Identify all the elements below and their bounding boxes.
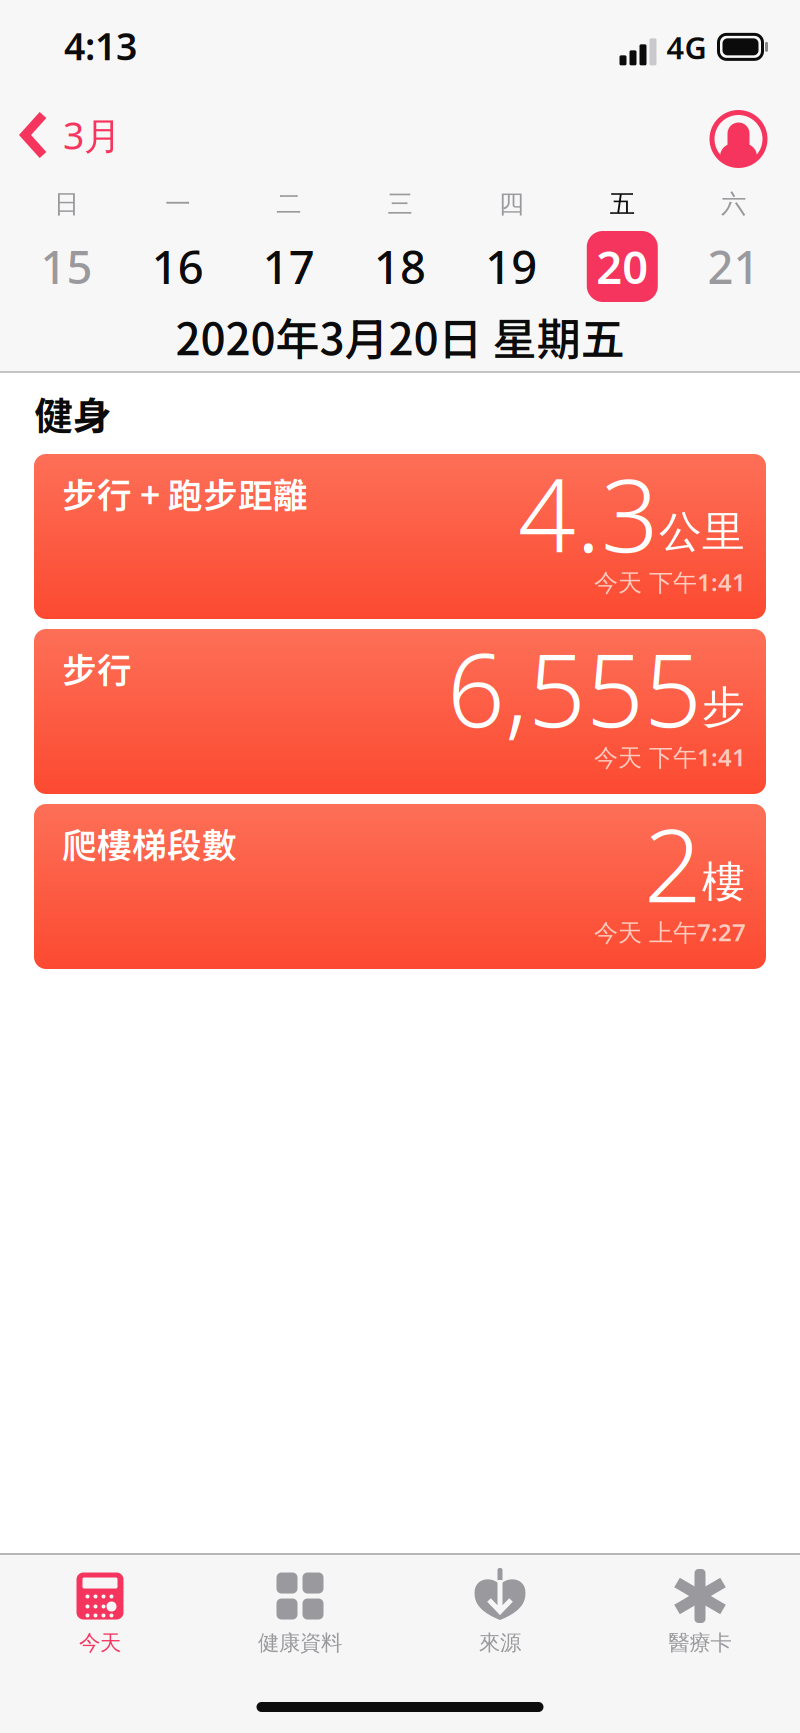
- staticText: 4:13: [64, 21, 137, 71]
- button[interactable]: 15: [11, 226, 122, 307]
- staticText: 三: [387, 188, 412, 219]
- staticText: 20: [596, 236, 648, 297]
- button[interactable]: 6,555: [34, 629, 766, 794]
- button[interactable]: 19: [456, 226, 567, 307]
- staticText: 16: [152, 236, 204, 297]
- staticText: 今天 下午1:41: [594, 566, 746, 598]
- staticText: 3月: [63, 110, 121, 160]
- staticText: 日: [54, 188, 79, 219]
- button[interactable]: 18: [344, 226, 455, 307]
- staticText: 今天 下午1:41: [594, 741, 746, 773]
- staticText: 來源: [479, 1630, 521, 1656]
- staticText: 18: [374, 236, 426, 297]
- staticText: 2020年3月20日 星期五: [175, 304, 624, 368]
- staticText: 2: [644, 796, 702, 930]
- staticText: 健康資料: [258, 1630, 342, 1656]
- staticText: 步: [702, 681, 745, 733]
- staticText: 今天: [79, 1630, 121, 1656]
- staticText: 6,555: [447, 621, 702, 755]
- staticText: 21: [707, 236, 759, 297]
- staticText: 4G: [666, 27, 706, 68]
- staticText: 步行 + 跑步距離: [62, 468, 308, 518]
- button[interactable]: 17: [233, 226, 344, 307]
- button[interactable]: 健康資料: [200, 1555, 400, 1662]
- staticText: 今天 上午7:27: [594, 916, 746, 948]
- staticText: 19: [485, 236, 537, 297]
- staticText: 爬樓梯段數: [62, 818, 237, 868]
- button[interactable]: 16: [122, 226, 233, 307]
- staticText: 五: [610, 188, 635, 219]
- staticText: 六: [721, 188, 746, 219]
- staticText: 一: [165, 188, 190, 219]
- staticText: 17: [263, 236, 315, 297]
- button[interactable]: 來源: [400, 1555, 600, 1662]
- staticText: 4.3: [518, 446, 659, 580]
- button[interactable]: Profile: [694, 88, 800, 182]
- button[interactable]: 2: [34, 804, 766, 969]
- button[interactable]: 20: [567, 226, 678, 307]
- staticText: 15: [41, 236, 93, 297]
- staticText: 步行: [62, 643, 132, 693]
- staticText: 醫療卡: [668, 1630, 731, 1656]
- staticText: 樓: [702, 856, 745, 908]
- button[interactable]: 今天: [0, 1555, 200, 1662]
- staticText: 二: [276, 188, 301, 219]
- button[interactable]: 3月: [0, 88, 139, 182]
- button[interactable]: 4.3: [34, 454, 766, 619]
- staticText: 四: [499, 188, 524, 219]
- button[interactable]: 醫療卡: [600, 1555, 800, 1662]
- button[interactable]: 21: [678, 226, 789, 307]
- staticText: 健身: [34, 385, 112, 441]
- staticText: 公里: [659, 506, 745, 558]
